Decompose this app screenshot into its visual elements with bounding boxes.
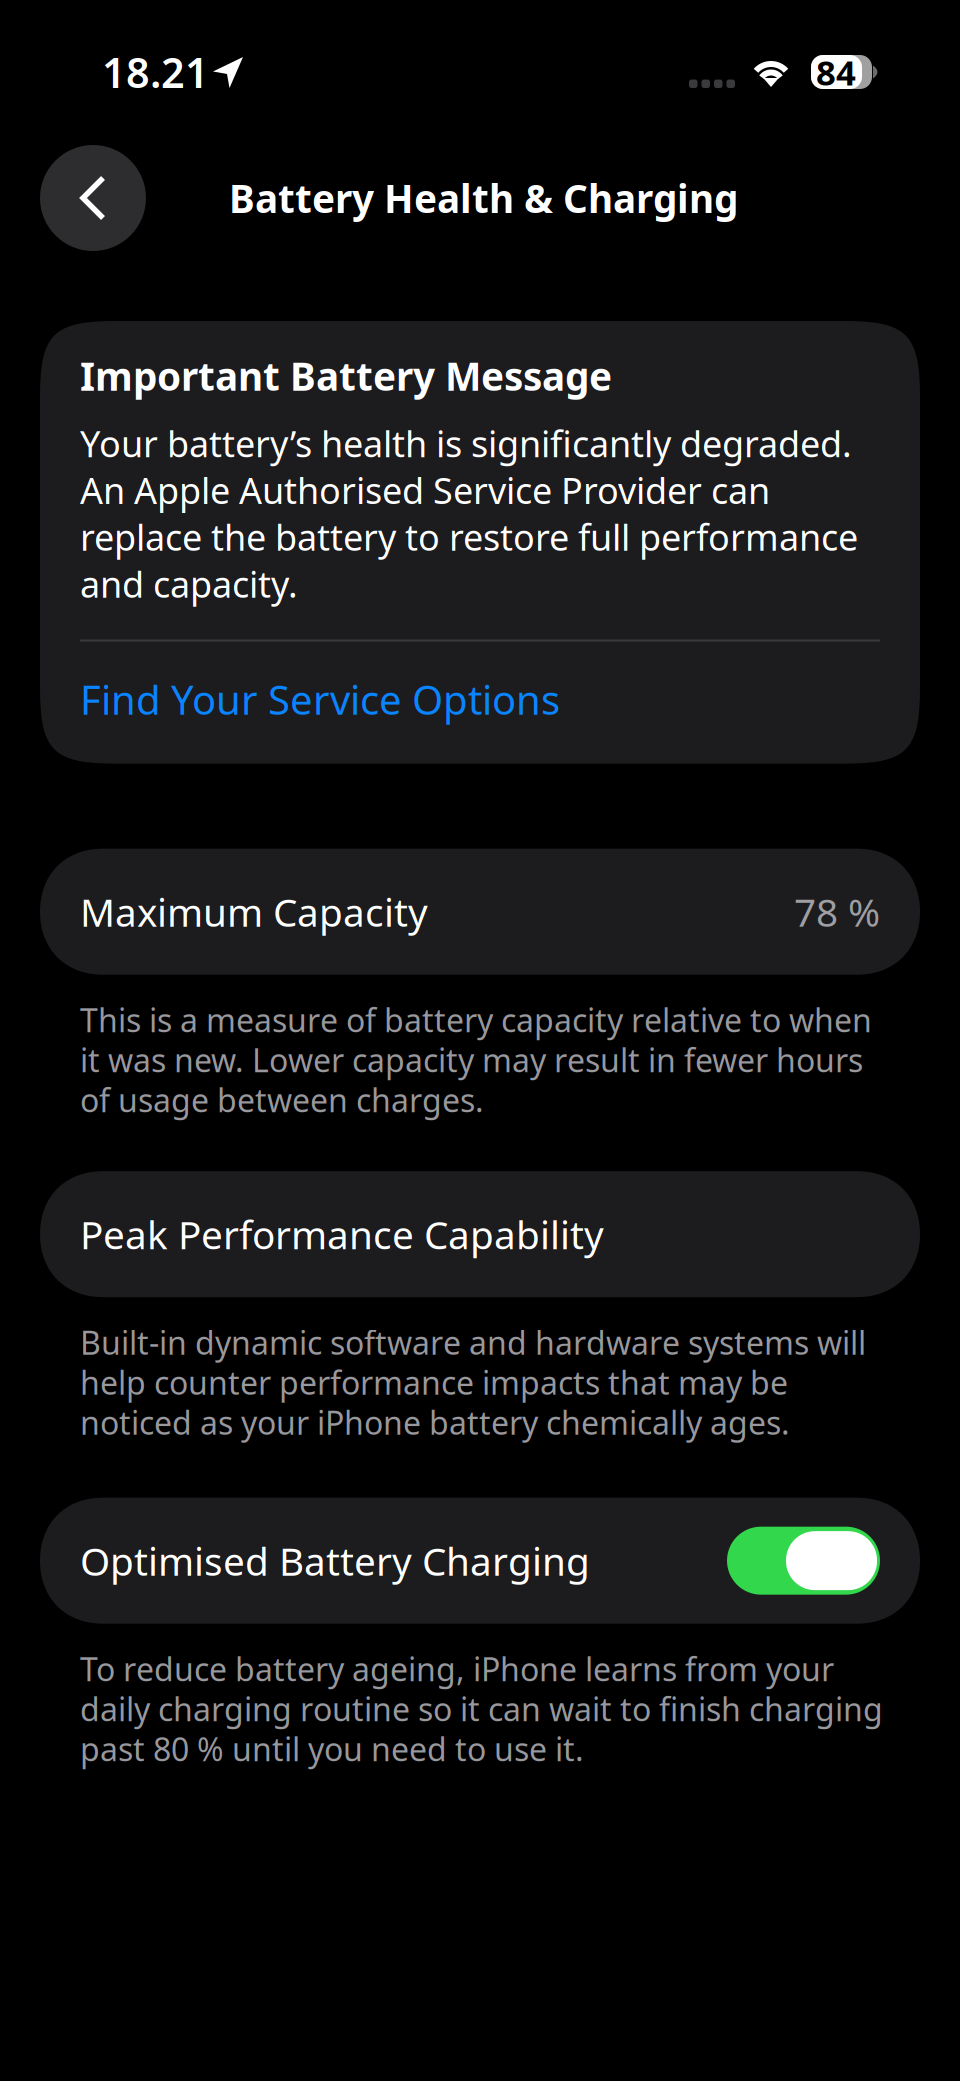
staticText: 18.21 [102,45,209,99]
button[interactable]: Optimised Battery Charging [727,1527,880,1595]
staticText: Important Battery Message [80,350,612,401]
staticText: 84 [816,49,856,95]
button[interactable]: Find Your Service Options [80,642,880,764]
button[interactable]: Maximum Capacity [0,849,960,975]
staticText: This is a measure of battery capacity re… [80,999,872,1121]
staticText: 78 % [794,886,880,937]
staticText: Peak Performance Capability [80,1208,604,1260]
staticText: To reduce battery ageing, iPhone learns … [80,1648,883,1770]
button[interactable]: Peak Performance Capability [0,1171,960,1297]
staticText: Built-in dynamic software and hardware s… [80,1321,866,1444]
staticText: Your battery’s health is significantly d… [80,419,858,607]
staticText: Battery Health & Charging [229,172,738,224]
staticText: Maximum Capacity [80,886,428,937]
button[interactable]: Back [40,145,146,251]
staticText: Find Your Service Options [80,673,560,726]
staticText: Optimised Battery Charging [80,1535,590,1586]
